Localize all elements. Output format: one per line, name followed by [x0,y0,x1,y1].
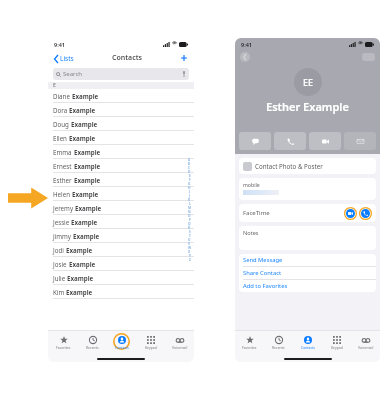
button[interactable]: Favorites [48,331,78,355]
staticText: Esther [53,176,74,184]
staticText: Notes [243,229,259,237]
button[interactable]: Recents [264,331,293,355]
staticText: Example [72,92,99,100]
staticText: Example [71,218,98,226]
staticText: Contacts [112,53,142,63]
staticText: Z [189,258,191,262]
button[interactable]: Julie [48,271,194,285]
button[interactable]: Voicemail [351,331,380,355]
staticText: Kim [53,288,66,296]
staticText: Voicemail [172,345,188,350]
staticText: Julie [53,274,67,282]
staticText: W [188,246,191,250]
staticText: Jimmy [53,232,73,240]
button[interactable]: Ellen [48,131,194,145]
button[interactable]: Jessie [48,215,194,229]
staticText: Dora [53,106,69,114]
staticText: Example [69,106,96,114]
button[interactable]: Search [53,68,189,80]
staticText: Contacts [115,345,129,350]
staticText: Example [66,288,93,296]
staticText: Add to Favorites [243,282,288,290]
button[interactable]: Favorites [235,331,264,355]
staticText: V [188,242,191,246]
staticText: Example [74,162,101,170]
button[interactable]: Voicemail [165,331,194,355]
button[interactable]: Send Message [239,254,376,266]
staticText: Doug [53,120,71,128]
button[interactable]: Ernest [48,159,194,173]
staticText: Example [72,190,99,198]
button[interactable]: video [344,207,357,220]
staticText: Voicemail [358,345,374,350]
button[interactable]: Doug [48,117,194,131]
staticText: T [189,234,191,238]
button[interactable]: Lists [53,53,75,64]
staticText: Helen [53,190,72,198]
staticText: M [188,206,191,210]
staticText: Esther Example [266,99,349,114]
staticText: Example [69,260,96,268]
staticText: Example [67,274,94,282]
staticText: N [188,210,191,214]
button[interactable]: Emma [48,145,194,159]
staticText: Share Contact [243,269,282,277]
staticText: F [189,178,191,182]
staticText: 9:41 [241,41,252,48]
button[interactable]: Notes [239,226,376,250]
button[interactable]: Helen [48,187,194,201]
staticText: Example [74,176,101,184]
button[interactable]: video [309,132,341,150]
button[interactable]: Add to Favorites [239,280,376,292]
button[interactable]: Contacts [107,331,136,355]
staticText: Q [188,222,191,226]
button[interactable]: Jimmy [48,229,194,243]
button[interactable]: call [274,132,306,150]
staticText: Example [69,134,96,142]
button[interactable]: Edit [362,53,375,61]
staticText: Contact Photo & Poster [255,162,323,170]
button[interactable]: mail [344,132,376,150]
button[interactable]: Josie [48,257,194,271]
staticText: K [188,198,191,202]
staticText: Example [73,232,100,240]
staticText: E [53,82,56,89]
button[interactable]: Esther [48,173,194,187]
staticText: J [189,194,190,198]
button[interactable]: Keypad [136,331,165,355]
staticText: Example [71,120,98,128]
button[interactable]: Contacts [293,331,322,355]
staticText: Ernest [53,162,74,170]
button[interactable]: Keypad [322,331,351,355]
staticText: L [189,202,191,206]
staticText: Favorites [56,345,71,350]
staticText: EE [303,76,314,88]
button[interactable]: Kim [48,285,194,299]
staticText: Jodi [53,246,66,254]
staticText: Recents [272,345,285,350]
button[interactable]: call [359,207,372,220]
button[interactable]: message [239,132,271,150]
button[interactable]: Dora [48,103,194,117]
staticText: X [188,250,191,254]
staticText: P [189,218,191,222]
button[interactable]: mobile [239,178,376,200]
button[interactable]: Recents [78,331,107,355]
staticText: Send Message [243,256,283,264]
staticText: Keypad [145,345,157,350]
staticText: Ellen [53,134,69,142]
button[interactable]: Diane [48,89,194,103]
button[interactable]: Contact Photo & Poster [239,158,376,174]
staticText: mobile [243,181,260,188]
staticText: Recents [86,345,99,350]
button[interactable]: Jodi [48,243,194,257]
staticText: Keypad [331,345,343,350]
staticText: U [188,238,191,242]
staticText: D [188,170,191,174]
button[interactable]: Share Contact [239,267,376,279]
button[interactable]: Jeremy [48,201,194,215]
staticText: Jessie [53,218,71,226]
button[interactable]: Back [240,52,250,62]
button[interactable]: Add contact [179,53,189,63]
staticText: A [188,158,191,162]
